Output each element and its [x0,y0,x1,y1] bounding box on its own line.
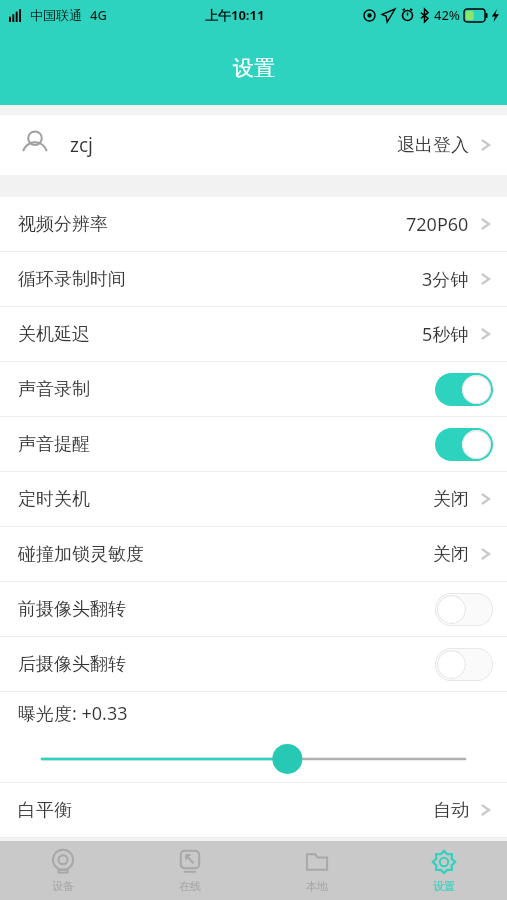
button[interactable]: Exposure slider [0,734,507,782]
staticText: 42% [434,6,460,24]
staticText: 碰撞加锁灵敏度 [18,543,144,566]
staticText: 定时关机 [18,488,90,511]
staticText: 前摄像头翻转 [18,598,126,621]
button[interactable]: 声音提醒 [0,417,507,471]
staticText: 设置 [233,55,275,81]
button[interactable]: 在线 [126,841,253,900]
staticText: 关闭 [433,543,469,566]
staticText: 上午10:11 [205,6,265,24]
staticText: 曝光度: +0.33 [18,701,128,726]
staticText: 退出登入 [397,134,469,157]
button[interactable]: 白平衡 [0,783,507,837]
staticText: 声音提醒 [18,433,90,456]
staticText: 关闭 [433,488,469,511]
staticText: 自动 [433,799,469,822]
staticText: zcj [70,132,93,158]
button[interactable]: On [435,373,493,406]
button[interactable]: On [435,428,493,461]
staticText: 循环录制时间 [18,268,126,291]
button[interactable]: 视频分辨率 [0,197,507,251]
staticText: 在线 [179,879,201,893]
staticText: 关机延迟 [18,323,90,346]
button[interactable]: 碰撞加锁灵敏度 [0,527,507,581]
staticText: 视频分辨率 [18,213,108,236]
button[interactable]: 关机延迟 [0,307,507,361]
button[interactable]: 定时关机 [0,472,507,526]
button[interactable]: 循环录制时间 [0,252,507,306]
staticText: 中国联通 [30,7,82,23]
button[interactable]: 声音录制 [0,362,507,416]
staticText: 白平衡 [18,799,72,822]
staticText: 4G [90,6,107,24]
staticText: 后摄像头翻转 [18,653,126,676]
button[interactable]: 本地 [253,841,380,900]
button[interactable]: 设置 [380,841,507,900]
button[interactable]: 后摄像头翻转 [0,637,507,691]
staticText: 设备 [52,879,74,893]
staticText: 设置 [433,879,455,893]
button[interactable]: Off [435,593,493,626]
button[interactable]: zcj [0,115,507,175]
button[interactable]: 设备 [0,841,126,900]
button[interactable]: Off [435,648,493,681]
staticText: 本地 [306,879,328,893]
staticText: 声音录制 [18,378,90,401]
staticText: 3分钟 [422,267,469,292]
staticText: 720P60 [406,212,469,237]
button[interactable]: 前摄像头翻转 [0,582,507,636]
staticText: 5秒钟 [422,322,469,347]
